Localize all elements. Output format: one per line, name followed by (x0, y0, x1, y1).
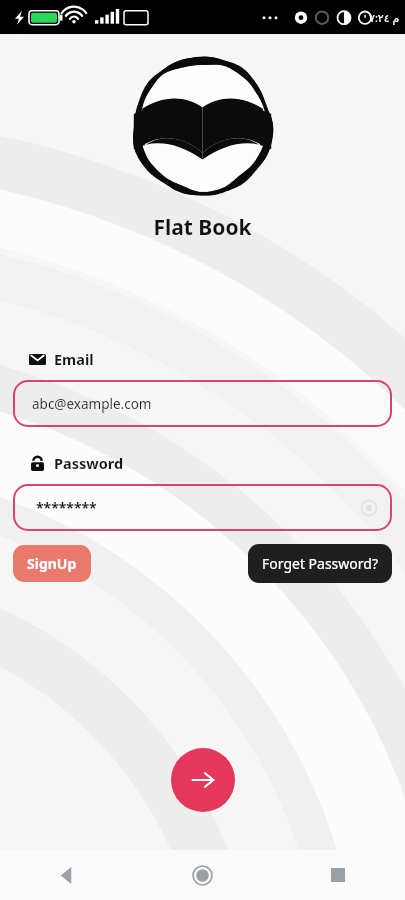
button[interactable]: ******** (13, 484, 392, 531)
button[interactable]: abc@example.com (13, 380, 392, 427)
button[interactable]: Recents (270, 850, 405, 900)
button[interactable]: Home (135, 850, 270, 900)
staticText: Flat Book (153, 213, 252, 242)
button[interactable]: SignUp (13, 545, 91, 582)
staticText: Password (54, 453, 124, 473)
staticText: ******** (36, 498, 97, 517)
button[interactable]: Back (0, 850, 135, 900)
staticText: م ٧:٢٤ (369, 10, 400, 25)
staticText: Email (54, 349, 94, 369)
button[interactable]: Continue (171, 748, 235, 812)
staticText: Forget Password? (262, 554, 378, 573)
button[interactable]: Forget Password? (248, 544, 392, 583)
button[interactable]: Show password (360, 499, 378, 517)
staticText: abc@example.com (32, 395, 152, 413)
staticText: SignUp (27, 554, 77, 573)
